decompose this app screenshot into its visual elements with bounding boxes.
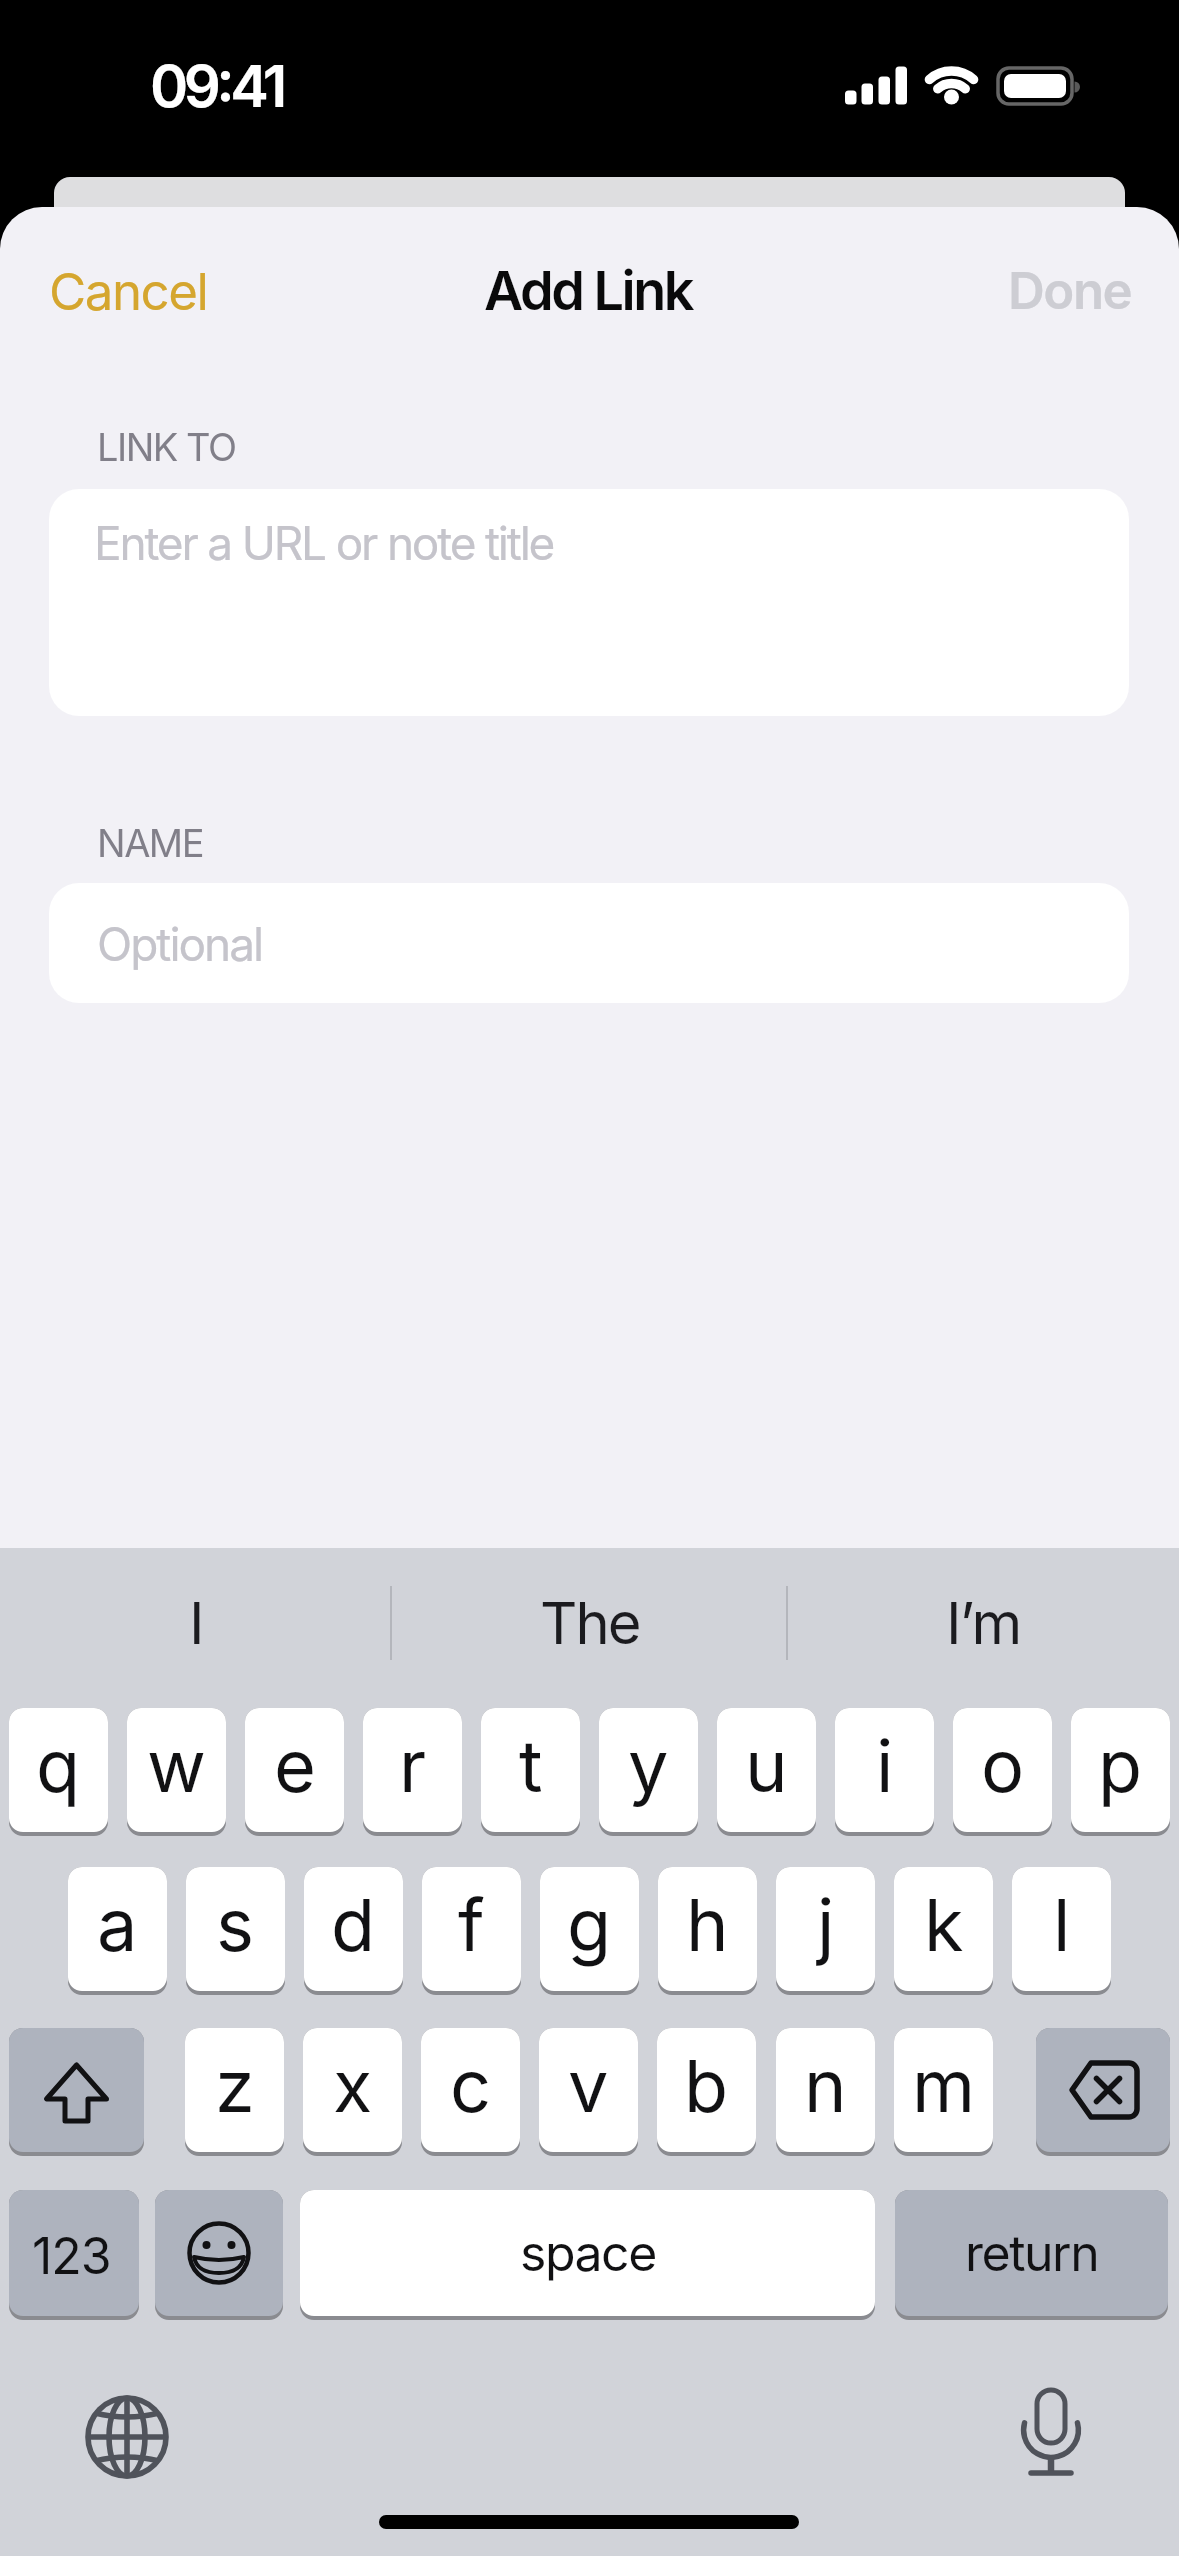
- button[interactable]: b: [657, 2028, 756, 2152]
- staticText: Add Link: [484, 258, 692, 323]
- staticText: s: [216, 1881, 255, 1968]
- button[interactable]: [49, 489, 1129, 716]
- button[interactable]: The: [393, 1560, 786, 1685]
- button[interactable]: I: [0, 1560, 391, 1685]
- button[interactable]: t: [481, 1708, 580, 1832]
- staticText: 09:41: [150, 51, 283, 121]
- button[interactable]: u: [717, 1708, 816, 1832]
- button[interactable]: n: [776, 2028, 875, 2152]
- button[interactable]: l: [1012, 1867, 1111, 1991]
- button[interactable]: g: [540, 1867, 639, 1991]
- button[interactable]: [1036, 2028, 1170, 2152]
- button[interactable]: q: [9, 1708, 108, 1832]
- button[interactable]: I’m: [788, 1560, 1179, 1685]
- button[interactable]: x: [303, 2028, 402, 2152]
- staticText: space: [520, 2223, 656, 2283]
- staticText: l: [1053, 1881, 1071, 1968]
- staticText: NAME: [97, 820, 204, 866]
- staticText: b: [684, 2042, 729, 2129]
- button[interactable]: w: [127, 1708, 226, 1832]
- button[interactable]: a: [68, 1867, 167, 1991]
- button[interactable]: [155, 2190, 283, 2316]
- staticText: LINK TO: [97, 424, 236, 470]
- staticText: n: [804, 2042, 847, 2129]
- button[interactable]: e: [245, 1708, 344, 1832]
- button[interactable]: f: [422, 1867, 521, 1991]
- button[interactable]: d: [304, 1867, 403, 1991]
- staticText: i: [876, 1722, 894, 1809]
- button[interactable]: 123: [9, 2190, 139, 2316]
- staticText: I: [189, 1588, 203, 1658]
- staticText: o: [981, 1722, 1025, 1809]
- staticText: c: [450, 2042, 492, 2129]
- staticText: q: [36, 1722, 81, 1809]
- button[interactable]: space: [300, 2190, 875, 2316]
- staticText: a: [97, 1881, 138, 1968]
- button[interactable]: Done: [1008, 260, 1132, 322]
- staticText: w: [147, 1722, 206, 1809]
- staticText: t: [519, 1722, 543, 1809]
- button[interactable]: Cancel: [49, 261, 208, 323]
- button[interactable]: s: [186, 1867, 285, 1991]
- staticText: r: [399, 1722, 427, 1809]
- button[interactable]: z: [185, 2028, 284, 2152]
- button[interactable]: p: [1071, 1708, 1170, 1832]
- staticText: z: [215, 2042, 255, 2129]
- button[interactable]: [49, 883, 1129, 1003]
- staticText: j: [817, 1881, 835, 1968]
- staticText: 123: [32, 2226, 111, 2286]
- staticText: Optional: [97, 916, 263, 972]
- staticText: return: [965, 2223, 1099, 2283]
- button[interactable]: m: [894, 2028, 993, 2152]
- staticText: v: [568, 2042, 609, 2129]
- staticText: y: [628, 1722, 669, 1809]
- staticText: The: [540, 1588, 640, 1658]
- staticText: u: [745, 1722, 788, 1809]
- staticText: h: [686, 1881, 729, 1968]
- button[interactable]: r: [363, 1708, 462, 1832]
- button[interactable]: j: [776, 1867, 875, 1991]
- staticText: f: [458, 1881, 485, 1968]
- staticText: x: [333, 2042, 373, 2129]
- staticText: e: [274, 1722, 316, 1809]
- button[interactable]: [9, 2028, 144, 2152]
- staticText: m: [912, 2042, 976, 2129]
- staticText: Enter a URL or note title: [94, 515, 554, 571]
- button[interactable]: return: [895, 2190, 1168, 2316]
- button[interactable]: h: [658, 1867, 757, 1991]
- button[interactable]: [72, 2382, 182, 2492]
- staticText: d: [331, 1881, 376, 1968]
- button[interactable]: o: [953, 1708, 1052, 1832]
- staticText: k: [924, 1881, 964, 1968]
- button[interactable]: y: [599, 1708, 698, 1832]
- staticText: g: [567, 1881, 612, 1968]
- staticText: I’m: [946, 1588, 1021, 1658]
- button[interactable]: i: [835, 1708, 934, 1832]
- staticText: p: [1098, 1722, 1143, 1809]
- button[interactable]: [996, 2377, 1106, 2487]
- button[interactable]: c: [421, 2028, 520, 2152]
- button[interactable]: v: [539, 2028, 638, 2152]
- button[interactable]: k: [894, 1867, 993, 1991]
